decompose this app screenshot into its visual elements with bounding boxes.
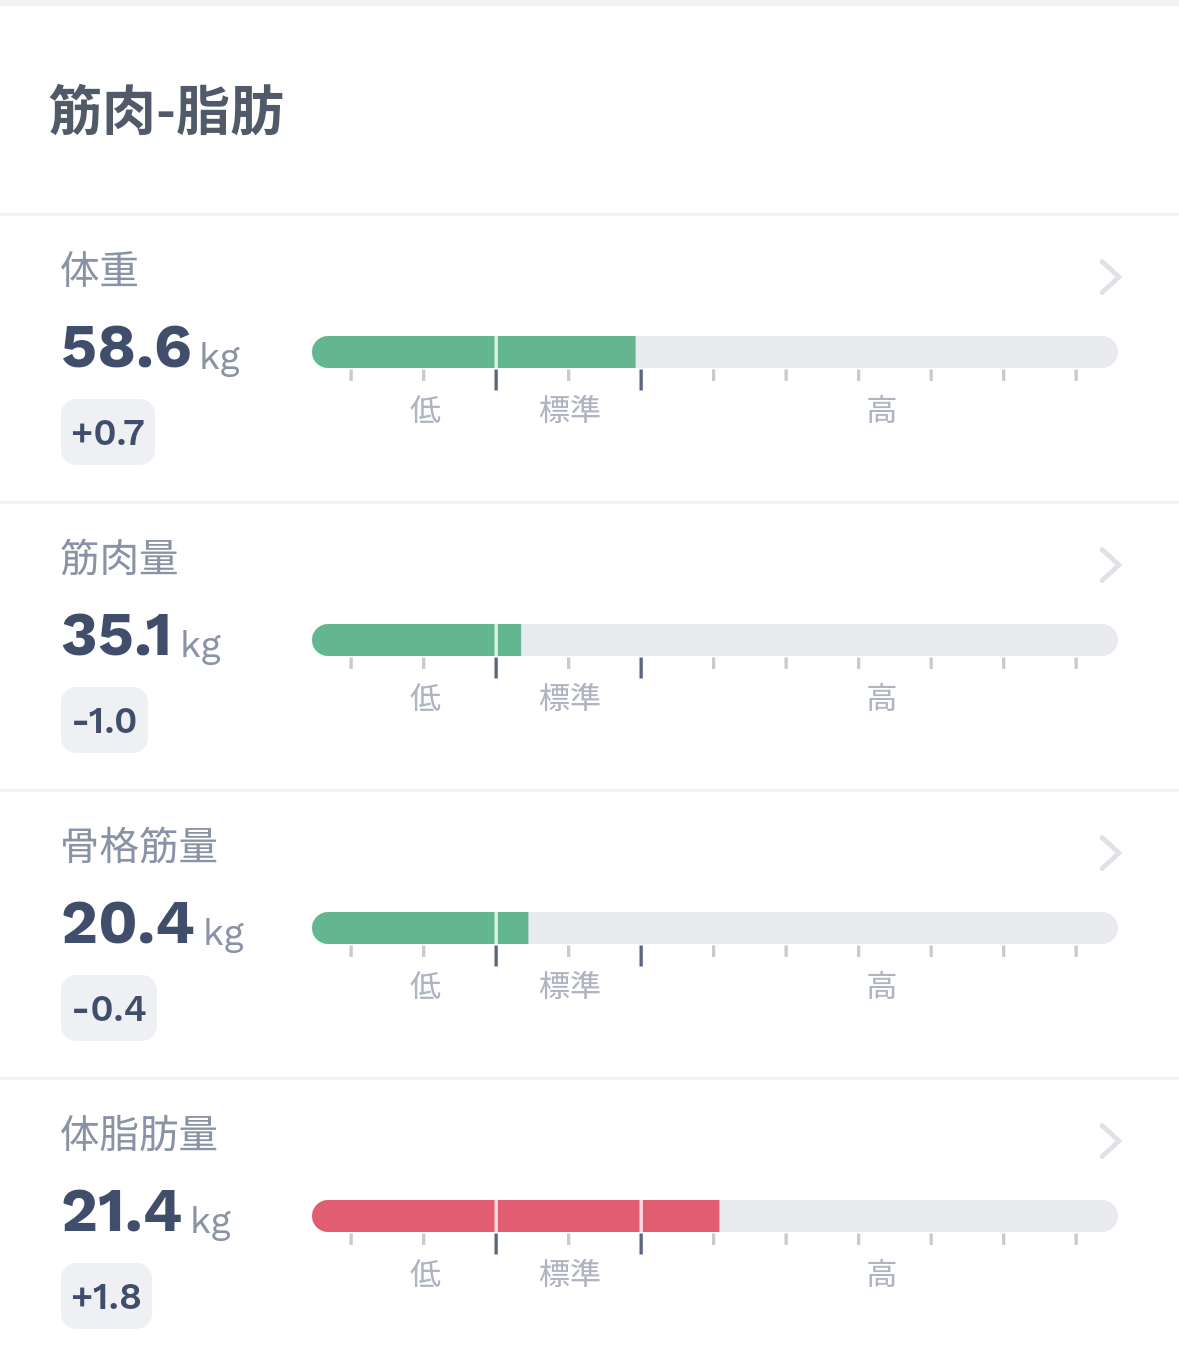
button[interactable]: 骨格筋量の詳細を表示 bbox=[1078, 814, 1138, 874]
staticText: 標準 bbox=[539, 1249, 601, 1294]
staticText: 35.1 bbox=[61, 597, 173, 670]
staticText: 高 bbox=[866, 385, 897, 430]
staticText: 標準 bbox=[539, 961, 601, 1006]
button[interactable]: +1.8 bbox=[61, 1263, 152, 1329]
staticText: 筋肉-脂肪 bbox=[48, 67, 284, 145]
button[interactable]: 体脂肪量の詳細を表示 bbox=[1078, 1102, 1138, 1162]
button[interactable]: -1.0 bbox=[61, 687, 148, 753]
staticText: -1.0 bbox=[71, 699, 138, 742]
button[interactable]: 体重の詳細を表示 bbox=[1078, 238, 1138, 298]
button[interactable]: 筋肉量 bbox=[0, 504, 1179, 789]
staticText: 高 bbox=[866, 1249, 897, 1294]
staticText: 高 bbox=[866, 961, 897, 1006]
staticText: kg bbox=[203, 911, 244, 954]
button[interactable]: 体脂肪量 bbox=[0, 1080, 1179, 1355]
staticText: +0.7 bbox=[71, 411, 145, 454]
staticText: 低 bbox=[410, 673, 441, 718]
staticText: 標準 bbox=[539, 385, 601, 430]
button[interactable]: 筋肉量の詳細を表示 bbox=[1078, 526, 1138, 586]
button[interactable]: 体重 bbox=[0, 216, 1179, 501]
staticText: 体脂肪量 bbox=[60, 1102, 218, 1159]
staticText: 体重 bbox=[60, 238, 139, 295]
staticText: +1.8 bbox=[71, 1275, 142, 1318]
staticText: -0.4 bbox=[71, 987, 147, 1030]
staticText: kg bbox=[180, 623, 221, 666]
staticText: 低 bbox=[410, 1249, 441, 1294]
button[interactable]: +0.7 bbox=[61, 399, 155, 465]
staticText: 高 bbox=[866, 673, 897, 718]
button[interactable]: 骨格筋量 bbox=[0, 792, 1179, 1077]
staticText: 低 bbox=[410, 385, 441, 430]
staticText: kg bbox=[199, 335, 240, 378]
staticText: 骨格筋量 bbox=[60, 814, 218, 871]
button[interactable]: -0.4 bbox=[61, 975, 157, 1041]
staticText: 低 bbox=[410, 961, 441, 1006]
staticText: 標準 bbox=[539, 673, 601, 718]
staticText: kg bbox=[190, 1199, 231, 1242]
staticText: 20.4 bbox=[61, 885, 196, 958]
staticText: 58.6 bbox=[61, 309, 192, 382]
staticText: 21.4 bbox=[61, 1173, 183, 1246]
staticText: 筋肉量 bbox=[60, 526, 179, 583]
